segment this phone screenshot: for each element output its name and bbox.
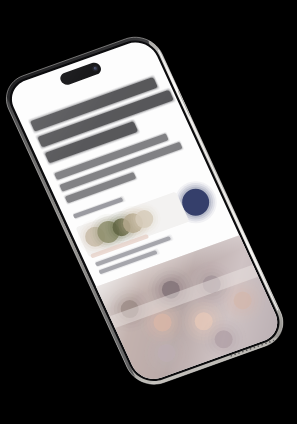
button[interactable]: Phone mockup showing an article screen (0, 0, 297, 424)
